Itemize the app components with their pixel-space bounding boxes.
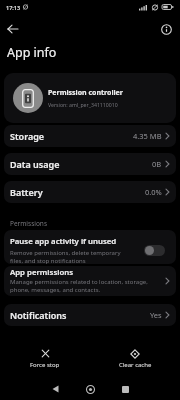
staticText: Remove permissions, delete temporary fil… — [10, 249, 121, 264]
staticText: App permissions — [10, 267, 74, 278]
button[interactable] — [144, 245, 165, 256]
button[interactable] — [116, 380, 134, 398]
button[interactable] — [81, 380, 99, 398]
staticText: Notifications — [10, 309, 67, 321]
button[interactable]: Storage — [4, 125, 176, 147]
staticText: 4.35 MB — [133, 131, 162, 141]
button[interactable] — [46, 380, 64, 398]
staticText: Permissions — [10, 219, 48, 228]
button[interactable] — [159, 22, 173, 36]
button[interactable]: Battery — [4, 181, 176, 203]
staticText: Manage permissions related to location, … — [10, 278, 148, 293]
button[interactable]: Force stop — [0, 349, 90, 369]
staticText: 0B — [152, 159, 162, 169]
button[interactable]: Permission controller — [4, 73, 176, 123]
staticText: 0.0% — [145, 187, 162, 197]
button[interactable]: Data usage — [4, 153, 176, 175]
button[interactable]: Notifications — [4, 304, 176, 326]
staticText: Permission controller — [48, 88, 123, 98]
staticText: Data usage — [10, 158, 60, 170]
staticText: 17:13 — [6, 4, 21, 11]
staticText: Clear cache — [119, 361, 152, 369]
button[interactable] — [7, 21, 23, 37]
staticText: Storage — [10, 130, 45, 142]
staticText: Version: aml_per_341110010 — [48, 101, 118, 108]
staticText: App info — [7, 44, 57, 61]
staticText: Yes — [150, 310, 162, 320]
staticText: Force stop — [30, 361, 60, 369]
staticText: Battery — [10, 186, 43, 198]
button[interactable]: App permissions — [4, 266, 176, 296]
staticText: Pause app activity if unused — [10, 236, 117, 247]
button[interactable]: Pause app activity if unused — [4, 230, 176, 264]
button[interactable]: Clear cache — [90, 349, 180, 369]
